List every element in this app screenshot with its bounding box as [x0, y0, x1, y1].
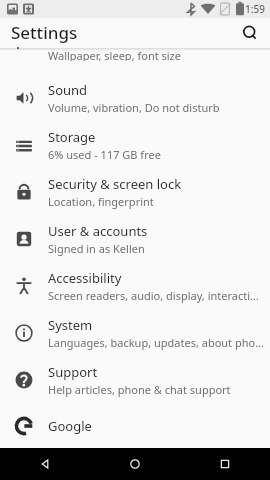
button[interactable]: Back: [0, 448, 90, 480]
staticText: Screen readers, audio, display, interact…: [48, 288, 264, 303]
staticText: Wallpaper, sleep, font size: [48, 48, 181, 61]
button[interactable]: User & accounts: [0, 215, 270, 262]
staticText: Help articles, phone & chat support: [48, 382, 231, 397]
staticText: Storage: [48, 128, 96, 146]
button[interactable]: Search settings: [234, 18, 266, 48]
staticText: Security & screen lock: [48, 175, 182, 193]
staticText: Support: [48, 363, 98, 381]
staticText: Sound: [48, 81, 88, 99]
button[interactable]: Security & screen lock: [0, 168, 270, 215]
staticText: 6% used - 117 GB free: [48, 147, 161, 162]
staticText: Settings: [11, 21, 78, 44]
staticText: Location, fingerprint: [48, 194, 154, 209]
staticText: Signed in as Kellen: [48, 241, 145, 256]
staticText: 1:59: [245, 2, 265, 16]
staticText: Google: [48, 417, 92, 435]
button[interactable]: Storage: [0, 121, 270, 168]
staticText: User & accounts: [48, 222, 148, 240]
button[interactable]: Accessibility: [0, 262, 270, 309]
button[interactable]: Recent apps: [180, 448, 270, 480]
button[interactable]: Wallpaper, sleep, font size: [0, 48, 270, 62]
button[interactable]: Home: [90, 448, 180, 480]
button[interactable]: Google: [0, 403, 270, 448]
button[interactable]: Sound: [0, 62, 270, 121]
staticText: System: [48, 316, 93, 334]
staticText: Volume, vibration, Do not disturb: [48, 100, 220, 115]
staticText: Languages, backup, updates, about phone: [48, 335, 264, 350]
button[interactable]: System: [0, 309, 270, 356]
button[interactable]: Support: [0, 356, 270, 403]
staticText: Accessibility: [48, 269, 122, 287]
